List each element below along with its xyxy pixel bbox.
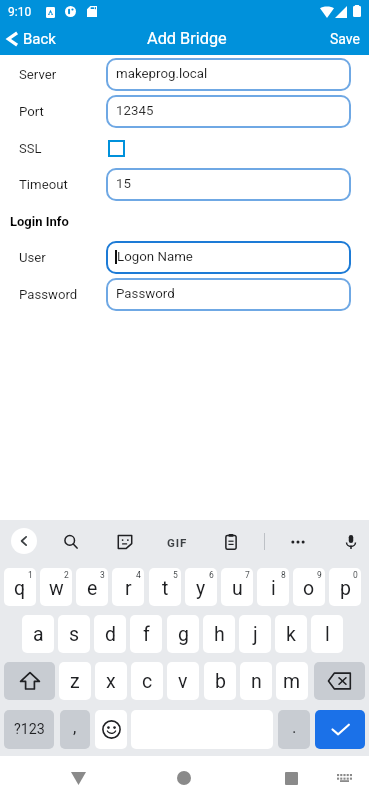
- button[interactable]: ?123: [4, 710, 54, 749]
- staticText: 9:10: [8, 5, 32, 19]
- staticText: .: [292, 717, 297, 737]
- staticText: makeprog.local: [116, 66, 208, 82]
- button[interactable]: n: [240, 662, 272, 700]
- button[interactable]: q: [4, 568, 36, 606]
- button[interactable]: s: [58, 615, 90, 653]
- button[interactable]: Recent apps: [271, 756, 311, 800]
- staticText: Port: [19, 104, 44, 119]
- button[interactable]: 12345: [106, 95, 351, 128]
- staticText: 1: [28, 570, 33, 580]
- staticText: Add Bridge: [147, 29, 227, 48]
- staticText: 5: [173, 570, 178, 580]
- staticText: m: [283, 670, 301, 693]
- staticText: 12345: [116, 103, 154, 119]
- button[interactable]: b: [204, 662, 236, 700]
- staticText: 7: [245, 570, 250, 580]
- staticText: User: [19, 250, 46, 265]
- button[interactable]: o: [293, 568, 325, 606]
- staticText: 3: [100, 570, 105, 580]
- staticText: 2: [64, 570, 69, 580]
- button[interactable]: f: [130, 615, 162, 653]
- button[interactable]: Backspace: [314, 662, 365, 700]
- button[interactable]: SSL: [108, 140, 125, 157]
- button[interactable]: g: [167, 615, 199, 653]
- button[interactable]: Search: [58, 529, 84, 555]
- button[interactable]: p: [329, 568, 361, 606]
- button[interactable]: v: [167, 662, 199, 700]
- button[interactable]: Voice input: [338, 529, 364, 555]
- staticText: Password: [19, 287, 78, 302]
- button[interactable]: Home: [164, 756, 204, 800]
- button[interactable]: u: [221, 568, 253, 606]
- button[interactable]: Back: [58, 756, 98, 800]
- staticText: t: [162, 577, 169, 600]
- staticText: b: [215, 670, 226, 693]
- button[interactable]: e: [76, 568, 108, 606]
- button[interactable]: c: [131, 662, 163, 700]
- staticText: a: [33, 623, 44, 646]
- button[interactable]: Switch keyboard: [324, 756, 364, 800]
- button[interactable]: GIF: [164, 529, 190, 555]
- staticText: f: [143, 623, 150, 646]
- button[interactable]: makeprog.local: [106, 58, 351, 91]
- button[interactable]: y: [185, 568, 217, 606]
- button[interactable]: 15: [106, 168, 351, 201]
- button[interactable]: j: [239, 615, 271, 653]
- staticText: Logon Name: [117, 249, 193, 265]
- button[interactable]: Close keyboard toolbar: [11, 528, 37, 554]
- button[interactable]: Shift: [4, 662, 55, 700]
- staticText: i: [271, 577, 276, 600]
- staticText: 4: [136, 570, 141, 580]
- staticText: w: [49, 577, 64, 600]
- button[interactable]: Password: [106, 278, 351, 311]
- button[interactable]: l: [311, 615, 343, 653]
- staticText: 6: [209, 570, 214, 580]
- staticText: GIF: [167, 536, 188, 549]
- staticText: j: [253, 623, 258, 646]
- staticText: r: [125, 577, 132, 600]
- button[interactable]: Emoji: [95, 710, 127, 749]
- staticText: g: [178, 623, 189, 646]
- button[interactable]: w: [40, 568, 72, 606]
- button[interactable]: More options: [285, 529, 311, 555]
- button[interactable]: Clipboard: [218, 529, 244, 555]
- button[interactable]: .: [278, 710, 310, 749]
- staticText: SSL: [19, 141, 42, 156]
- button[interactable]: h: [203, 615, 235, 653]
- button[interactable]: r: [112, 568, 144, 606]
- staticText: Server: [19, 67, 57, 82]
- button[interactable]: t: [149, 568, 181, 606]
- staticText: Password: [116, 286, 175, 302]
- staticText: ?123: [14, 721, 45, 738]
- staticText: u: [232, 577, 243, 600]
- button[interactable]: z: [59, 662, 91, 700]
- staticText: 0: [353, 570, 358, 580]
- button[interactable]: i: [257, 568, 289, 606]
- staticText: d: [105, 623, 116, 646]
- button[interactable]: Save: [321, 22, 369, 55]
- staticText: h: [214, 623, 225, 646]
- button[interactable]: a: [22, 615, 54, 653]
- button[interactable]: Enter: [315, 710, 365, 749]
- staticText: y: [196, 577, 206, 600]
- button[interactable]: Logon Name: [106, 241, 351, 274]
- staticText: l: [325, 623, 330, 646]
- staticText: 8: [281, 570, 286, 580]
- staticText: 15: [116, 176, 131, 192]
- staticText: c: [142, 670, 153, 693]
- staticText: p: [340, 577, 351, 600]
- button[interactable]: d: [94, 615, 126, 653]
- button[interactable]: Back: [0, 22, 64, 55]
- staticText: Timeout: [19, 177, 68, 192]
- button[interactable]: m: [276, 662, 308, 700]
- staticText: v: [178, 670, 188, 693]
- staticText: o: [303, 577, 315, 600]
- staticText: Save: [330, 31, 360, 47]
- staticText: q: [14, 577, 26, 600]
- button[interactable]: k: [275, 615, 307, 653]
- button[interactable]: ,: [60, 710, 90, 749]
- button[interactable]: x: [95, 662, 127, 700]
- staticText: k: [286, 623, 296, 646]
- button[interactable]: Stickers: [112, 529, 138, 555]
